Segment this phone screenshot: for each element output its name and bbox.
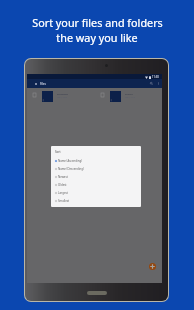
staticText: Files (40, 82, 46, 86)
button[interactable]: More options (155, 79, 161, 88)
staticText: Pictures (125, 93, 133, 96)
staticText: the way you like (56, 30, 138, 45)
staticText: Largest (58, 191, 68, 195)
staticText: Name (Descending) (58, 167, 84, 171)
staticText: Oldest (58, 183, 67, 187)
button[interactable]: Largest (51, 189, 141, 197)
button[interactable]: Oldest (51, 181, 141, 189)
button[interactable]: Search (148, 79, 155, 88)
button[interactable]: Pictures (101, 89, 163, 104)
staticText: Documents (57, 93, 68, 96)
staticText: Sort your files and folders (32, 15, 163, 30)
staticText: Sort (55, 150, 61, 154)
button[interactable]: Name (Descending) (51, 165, 141, 173)
staticText: 11:30 (152, 75, 159, 79)
staticText: Name (Ascending) (58, 159, 82, 163)
button[interactable]: Newest (51, 173, 141, 181)
staticText: Smallest (58, 199, 70, 203)
staticText: Newest (58, 175, 68, 179)
button[interactable]: Smallest (51, 197, 141, 205)
button[interactable]: Add (149, 263, 156, 270)
button[interactable]: Name (Ascending) (51, 157, 141, 165)
button[interactable]: Navigation menu (32, 79, 40, 88)
button[interactable]: Documents (33, 89, 95, 104)
